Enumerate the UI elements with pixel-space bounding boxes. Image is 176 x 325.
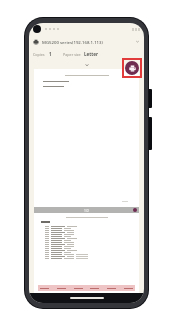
staticText: 1/2 (84, 208, 89, 212)
button[interactable]: Expand print options (80, 61, 93, 68)
staticText: 1 (49, 51, 52, 57)
staticText: Copies (33, 52, 45, 57)
button[interactable] (34, 213, 139, 293)
staticText: Letter (84, 51, 99, 57)
button[interactable]: Copies (33, 51, 52, 57)
staticText: Paper size (63, 52, 81, 57)
button[interactable] (34, 69, 139, 207)
button[interactable]: Print (125, 61, 139, 75)
button[interactable]: MG5200 series(192.168.1.113) (29, 35, 144, 48)
button[interactable]: Print this page (133, 208, 137, 212)
staticText: MG5200 series(192.168.1.113) (42, 39, 103, 45)
button[interactable]: Paper size (63, 51, 99, 57)
button[interactable]: Home (70, 297, 104, 299)
